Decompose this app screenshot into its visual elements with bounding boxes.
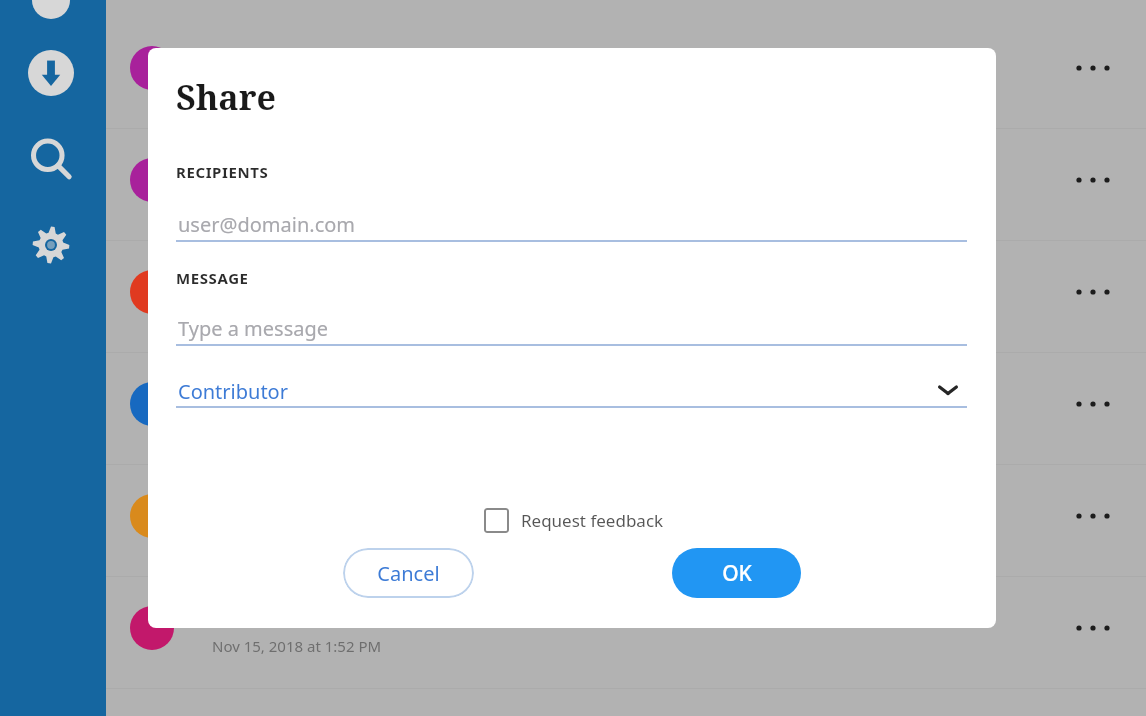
button[interactable]: Navigation item bbox=[25, 47, 77, 99]
staticText: Contributor bbox=[178, 378, 288, 405]
staticText: RECIPIENTS bbox=[176, 162, 269, 182]
button[interactable]: More options bbox=[106, 124, 1146, 236]
button[interactable]: More options bbox=[1070, 605, 1116, 651]
button[interactable]: More options bbox=[1070, 493, 1116, 539]
button[interactable]: More options bbox=[1070, 157, 1116, 203]
button[interactable]: More options bbox=[106, 460, 1146, 572]
button[interactable]: Open role dropdown bbox=[924, 366, 972, 414]
button[interactable]: Request feedback bbox=[484, 500, 664, 540]
staticText: Type a message bbox=[178, 315, 329, 342]
button[interactable]: Navigation item bbox=[25, 133, 77, 185]
button[interactable]: More options bbox=[106, 236, 1146, 348]
button[interactable]: More options bbox=[1070, 269, 1116, 315]
staticText: Request feedback bbox=[521, 509, 664, 532]
button[interactable]: Cancel bbox=[343, 548, 474, 598]
button[interactable]: Navigation item bbox=[25, 219, 77, 271]
button[interactable]: More options bbox=[1070, 45, 1116, 91]
button[interactable]: More options bbox=[106, 348, 1146, 460]
staticText: MESSAGE bbox=[176, 268, 249, 288]
staticText: Cancel bbox=[377, 560, 440, 587]
button[interactable]: Upload bbox=[29, 0, 73, 22]
button[interactable]: More options bbox=[1070, 381, 1116, 427]
staticText: user@domain.com bbox=[178, 211, 356, 238]
staticText: OK bbox=[722, 559, 752, 588]
staticText: Nov 15, 2018 at 1:52 PM bbox=[212, 636, 382, 656]
button[interactable]: OK bbox=[672, 548, 801, 598]
button[interactable]: More options bbox=[106, 572, 1146, 684]
button[interactable]: More options bbox=[106, 12, 1146, 124]
staticText: Share bbox=[176, 74, 276, 120]
